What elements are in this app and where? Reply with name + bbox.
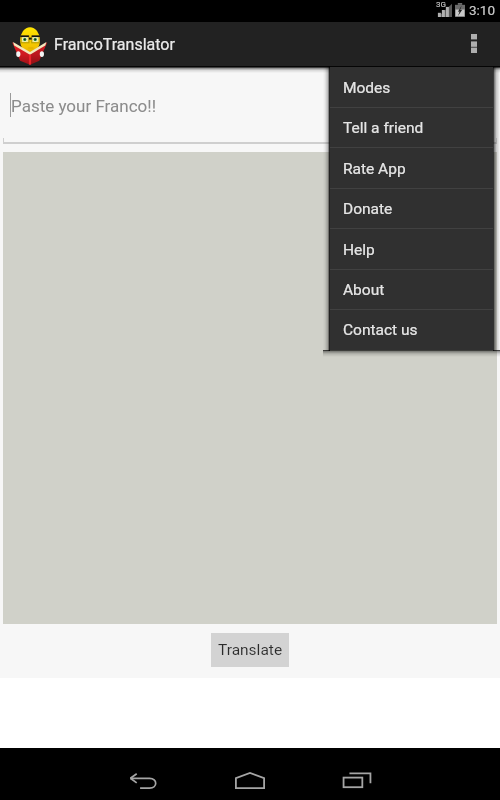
staticText: About bbox=[343, 281, 385, 299]
staticText: Help bbox=[343, 241, 375, 259]
button[interactable]: Translate bbox=[211, 633, 289, 667]
button[interactable]: About bbox=[330, 270, 493, 310]
button[interactable]: More options bbox=[452, 22, 500, 67]
button[interactable]: Contact us bbox=[330, 310, 493, 350]
staticText: FrancoTranslator bbox=[54, 35, 175, 54]
staticText: Rate App bbox=[343, 160, 406, 178]
button[interactable]: Recent apps bbox=[327, 762, 387, 798]
staticText: 3G bbox=[436, 0, 446, 9]
button[interactable]: Tell a friend bbox=[330, 108, 493, 148]
button[interactable]: Back bbox=[114, 762, 174, 798]
button[interactable]: Modes bbox=[330, 67, 493, 108]
button[interactable]: Help bbox=[330, 229, 493, 270]
button[interactable]: Donate bbox=[330, 189, 493, 229]
staticText: Modes bbox=[343, 79, 391, 97]
staticText: 3:10 bbox=[469, 2, 496, 18]
staticText: Tell a friend bbox=[343, 119, 424, 137]
staticText: Translate bbox=[218, 641, 283, 659]
button[interactable]: Home bbox=[220, 762, 280, 798]
staticText: Contact us bbox=[343, 321, 418, 339]
staticText: Donate bbox=[343, 200, 393, 218]
staticText: Paste your Franco!! bbox=[11, 96, 157, 116]
button[interactable]: Rate App bbox=[330, 148, 493, 189]
